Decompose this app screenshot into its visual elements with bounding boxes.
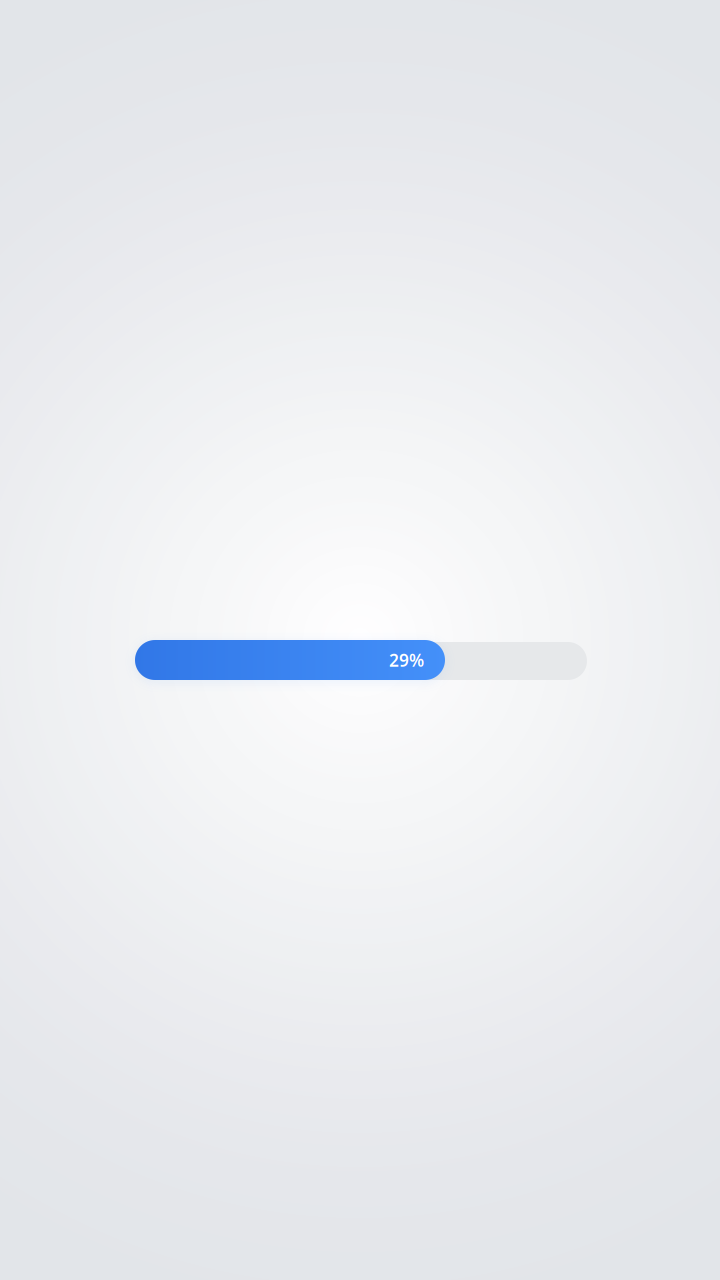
button[interactable]: Progress, 29 percent: [135, 640, 587, 680]
staticText: 29%: [389, 648, 424, 671]
